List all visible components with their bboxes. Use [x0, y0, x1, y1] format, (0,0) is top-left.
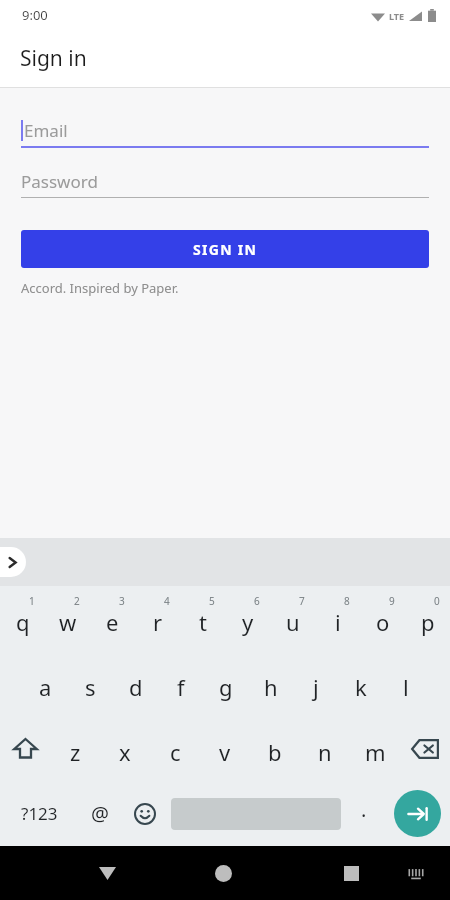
staticText: x — [119, 737, 131, 767]
staticText: 7 — [299, 594, 305, 608]
button[interactable]: k — [338, 651, 383, 716]
button[interactable]: 5 — [180, 586, 225, 651]
staticText: 9 — [389, 594, 395, 608]
staticText: 2 — [74, 594, 80, 608]
staticText: h — [264, 672, 278, 702]
staticText: 5 — [209, 594, 215, 608]
staticText: p — [421, 607, 435, 637]
button[interactable]: z — [50, 716, 100, 781]
staticText: m — [365, 737, 386, 767]
staticText: 1 — [29, 594, 35, 608]
staticText: e — [106, 607, 119, 637]
staticText: t — [199, 607, 207, 637]
staticText: SIGN IN — [193, 240, 258, 259]
button[interactable]: Recents — [327, 849, 375, 897]
staticText: Password — [21, 170, 98, 193]
button[interactable]: Switch keyboard — [396, 853, 436, 893]
staticText: r — [153, 607, 163, 637]
button[interactable]: x — [100, 716, 150, 781]
staticText: 3 — [119, 594, 125, 608]
button[interactable]: Backspace — [400, 716, 450, 781]
staticText: 4 — [164, 594, 170, 608]
button[interactable]: m — [350, 716, 400, 781]
button[interactable]: b — [250, 716, 300, 781]
staticText: d — [129, 672, 143, 702]
button[interactable]: l — [383, 651, 428, 716]
button[interactable]: Expand suggestions — [0, 547, 26, 577]
button[interactable]: Emoji — [122, 781, 168, 846]
button[interactable]: SIGN IN — [21, 230, 429, 268]
staticText: 0 — [434, 594, 440, 608]
staticText: z — [70, 737, 81, 767]
button[interactable]: 2 — [45, 586, 90, 651]
button[interactable]: c — [150, 716, 200, 781]
button[interactable]: Email — [21, 114, 429, 146]
staticText: 8 — [344, 594, 350, 608]
staticText: u — [286, 607, 300, 637]
button[interactable]: Shift — [0, 716, 50, 781]
staticText: i — [335, 607, 341, 637]
button[interactable]: d — [113, 651, 158, 716]
button[interactable]: ?123 — [0, 781, 78, 846]
button[interactable]: s — [68, 651, 113, 716]
button[interactable]: g — [203, 651, 248, 716]
button[interactable]: 9 — [360, 586, 405, 651]
button[interactable]: n — [300, 716, 350, 781]
staticText: Accord. Inspired by Paper. — [21, 279, 179, 297]
staticText: LTE — [389, 10, 405, 22]
staticText: s — [85, 672, 96, 702]
staticText: o — [376, 607, 390, 637]
staticText: j — [313, 672, 319, 702]
staticText: . — [361, 796, 367, 823]
staticText: n — [318, 737, 332, 767]
button[interactable]: f — [158, 651, 203, 716]
staticText: q — [16, 607, 30, 637]
staticText: g — [219, 672, 233, 702]
staticText: b — [268, 737, 282, 767]
staticText: c — [170, 737, 181, 767]
button[interactable]: . — [344, 781, 384, 846]
staticText: k — [355, 672, 367, 702]
staticText: f — [177, 672, 185, 702]
button[interactable]: 0 — [405, 586, 450, 651]
staticText: 6 — [254, 594, 260, 608]
staticText: 9:00 — [22, 6, 48, 24]
button[interactable]: j — [293, 651, 338, 716]
button[interactable]: Next — [394, 790, 441, 837]
button[interactable]: 1 — [0, 586, 45, 651]
button[interactable]: 3 — [90, 586, 135, 651]
button[interactable]: 4 — [135, 586, 180, 651]
staticText: y — [242, 607, 254, 637]
button[interactable]: 7 — [270, 586, 315, 651]
button[interactable]: Password — [21, 165, 429, 197]
button[interactable]: Home — [199, 849, 247, 897]
button[interactable]: h — [248, 651, 293, 716]
button[interactable]: a — [22, 651, 68, 716]
button[interactable]: 8 — [315, 586, 360, 651]
staticText: Sign in — [20, 44, 87, 73]
staticText: a — [39, 672, 52, 702]
button[interactable]: v — [200, 716, 250, 781]
staticText: l — [403, 672, 409, 702]
staticText: v — [219, 737, 231, 767]
staticText: Email — [24, 119, 68, 142]
staticText: @ — [91, 800, 109, 827]
staticText: w — [59, 607, 77, 637]
button[interactable]: Back — [83, 849, 131, 897]
button[interactable]: @ — [78, 781, 122, 846]
button[interactable]: 6 — [225, 586, 270, 651]
staticText: ?123 — [21, 802, 58, 825]
